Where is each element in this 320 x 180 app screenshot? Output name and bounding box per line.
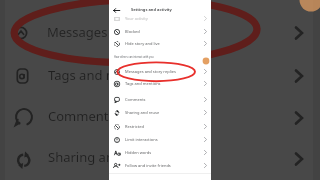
staticText: Comments: [125, 97, 200, 102]
staticText: Blocked: [125, 29, 200, 34]
staticText: How others can interact with you: [114, 55, 154, 58]
button[interactable]: Back: [110, 5, 122, 16]
staticText: Restricted: [125, 124, 200, 129]
button[interactable]: Messages and story replies: [109, 65, 211, 78]
button[interactable]: Your activity: [109, 12, 211, 25]
staticText: Messages and story replies: [125, 69, 200, 74]
staticText: Messages: [47, 23, 108, 41]
staticText: Limit interactions: [125, 137, 200, 142]
button[interactable]: Tags and mentions: [109, 77, 211, 90]
staticText: Tags and m: [48, 66, 118, 84]
staticText: Your activity: [125, 16, 200, 21]
button[interactable]: Restricted: [109, 120, 211, 133]
staticText: Hide story and live: [125, 41, 200, 46]
button[interactable]: Follow and invite friends: [109, 159, 211, 172]
button[interactable]: Hidden words: [109, 146, 211, 159]
button[interactable]: Blocked: [109, 25, 211, 38]
staticText: Follow and invite friends: [125, 163, 200, 168]
staticText: Hidden words: [125, 150, 200, 155]
button[interactable]: Comments: [109, 93, 211, 106]
button[interactable]: Limit interactions: [109, 133, 211, 146]
staticText: Sharing an: [48, 148, 114, 166]
staticText: Sharing and reuse: [125, 110, 200, 115]
staticText: Comments: [48, 107, 115, 125]
button[interactable]: Hide story and live: [109, 37, 211, 50]
staticText: Settings and activity: [131, 7, 172, 12]
button[interactable]: Sharing and reuse: [109, 106, 211, 119]
staticText: Tags and mentions: [125, 81, 200, 86]
